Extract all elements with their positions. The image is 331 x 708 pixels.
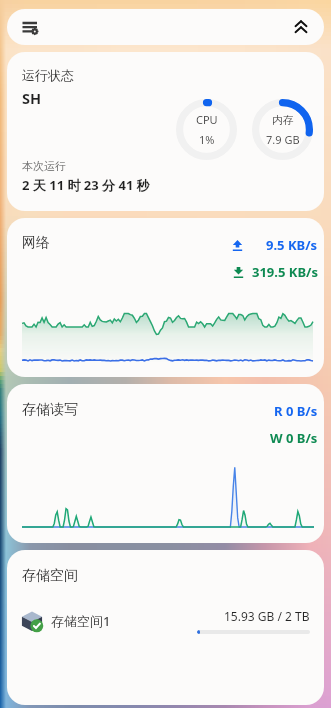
staticText: 存储空间 bbox=[22, 567, 78, 585]
staticText: 9.5 KB/s bbox=[266, 236, 318, 254]
staticText: 存储空间1 bbox=[51, 612, 111, 630]
staticText: W 0 B/s bbox=[270, 429, 318, 447]
staticText: SH bbox=[22, 88, 42, 108]
staticText: 本次运行 bbox=[22, 159, 66, 173]
staticText: 2 天 11 时 23 分 41 秒 bbox=[22, 176, 150, 194]
button[interactable]: 运行状态 bbox=[7, 52, 324, 211]
button[interactable]: Menu settings bbox=[16, 13, 44, 41]
staticText: 7.9 GB bbox=[266, 132, 300, 147]
button[interactable]: Collapse bbox=[287, 13, 315, 41]
staticText: 319.5 KB/s bbox=[252, 263, 318, 281]
staticText: 网络 bbox=[22, 234, 50, 252]
staticText: 1% bbox=[199, 132, 215, 147]
button[interactable]: 存储读写 bbox=[7, 384, 324, 543]
button[interactable]: 网络 bbox=[7, 218, 324, 377]
staticText: R 0 B/s bbox=[274, 402, 318, 420]
button[interactable]: 存储空间 bbox=[7, 550, 324, 705]
staticText: 存储读写 bbox=[22, 401, 78, 419]
staticText: 运行状态 bbox=[22, 67, 74, 83]
staticText: 15.93 GB / 2 TB bbox=[224, 608, 310, 624]
staticText: 内存 bbox=[272, 113, 294, 127]
staticText: CPU bbox=[196, 112, 218, 127]
